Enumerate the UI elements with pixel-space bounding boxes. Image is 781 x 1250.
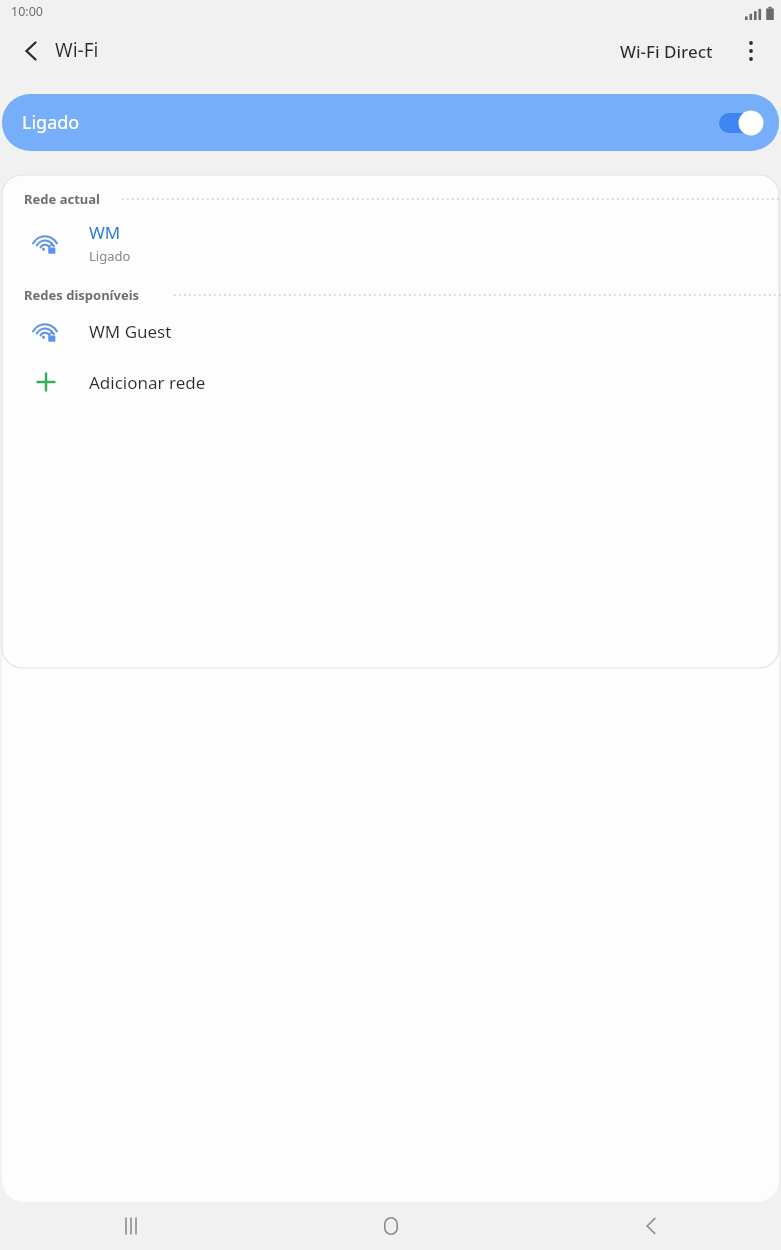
staticText: 10:00 [11, 3, 43, 20]
staticText: Adicionar rede [89, 371, 206, 394]
staticText: Redes disponíveis [24, 286, 140, 304]
button[interactable]: More options [730, 30, 772, 72]
staticText: Ligado [22, 110, 80, 135]
button[interactable]: Wi-Fi Direct [610, 30, 723, 72]
button[interactable]: Adicionar rede [2, 356, 779, 408]
button[interactable]: WM [2, 211, 779, 275]
button[interactable]: Recents [0, 1202, 261, 1250]
staticText: Wi-Fi Direct [620, 40, 713, 63]
button[interactable]: Back [10, 30, 52, 72]
button[interactable]: Ligado [2, 94, 779, 151]
staticText: Wi-Fi [55, 37, 99, 63]
button[interactable]: WM Guest [2, 305, 779, 357]
staticText: WM [89, 221, 121, 244]
button[interactable]: Home [261, 1202, 521, 1250]
button[interactable]: Back [521, 1202, 781, 1250]
staticText: WM Guest [89, 320, 172, 343]
staticText: Rede actual [24, 190, 100, 208]
staticText: Ligado [89, 247, 131, 265]
